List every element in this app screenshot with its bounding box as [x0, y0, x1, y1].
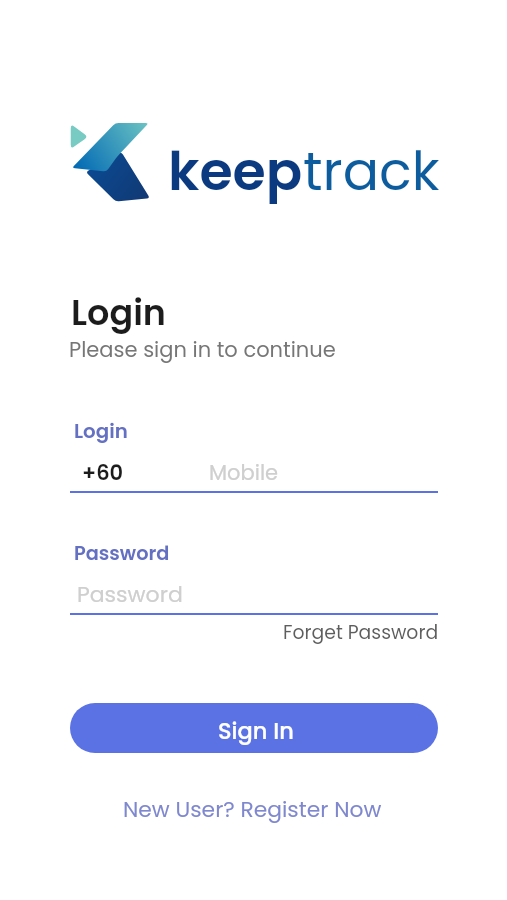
- staticText: track: [303, 134, 440, 209]
- staticText: Password: [77, 579, 183, 610]
- staticText: keep: [168, 134, 303, 209]
- button[interactable]: Password input: [70, 570, 438, 615]
- staticText: Forget Password: [283, 619, 439, 645]
- staticText: Mobile: [209, 458, 279, 487]
- staticText: Please sign in to continue: [69, 335, 336, 364]
- button[interactable]: Mobile number input: [70, 448, 438, 493]
- button[interactable]: New User? Register Now: [107, 786, 398, 833]
- staticText: Sign In: [218, 715, 294, 746]
- staticText: +60: [82, 458, 124, 487]
- staticText: Login: [74, 417, 128, 445]
- button[interactable]: Forget Password: [273, 615, 449, 649]
- staticText: Password: [74, 540, 170, 567]
- staticText: Login: [71, 288, 166, 337]
- other: keeptrack logo: [70, 119, 154, 207]
- staticText: New User? Register Now: [123, 794, 382, 825]
- button[interactable]: Sign In: [70, 703, 438, 753]
